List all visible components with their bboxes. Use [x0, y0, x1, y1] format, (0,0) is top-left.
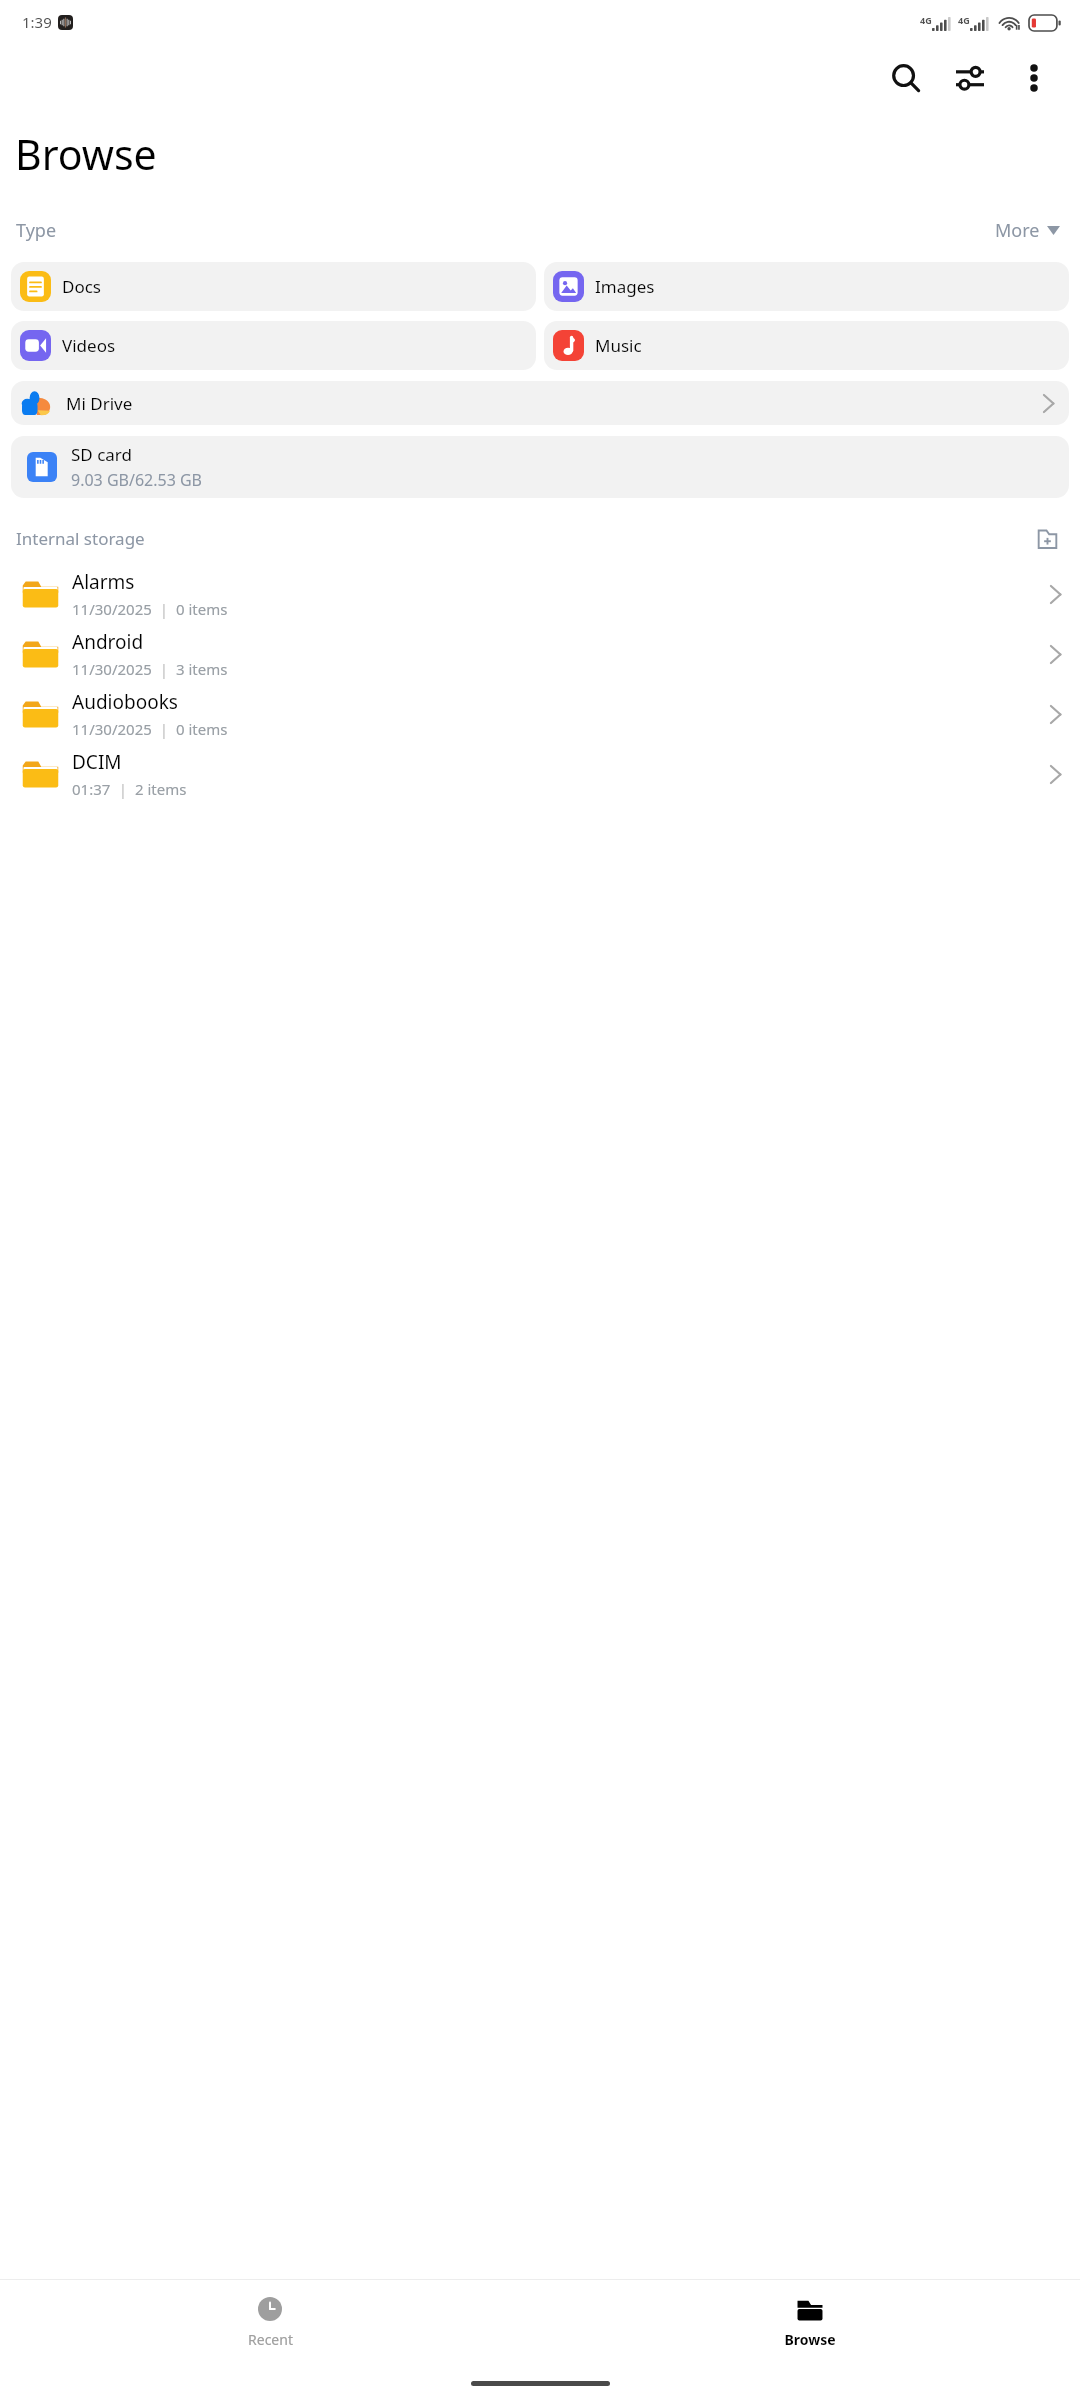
staticText: Browse — [15, 126, 157, 182]
staticText: Type — [16, 218, 57, 243]
staticText: DCIM — [72, 749, 122, 775]
staticText: More — [995, 218, 1040, 243]
button[interactable]: Search — [874, 46, 938, 110]
button[interactable]: Images — [544, 262, 1069, 311]
staticText: Internal storage — [16, 527, 145, 550]
button[interactable]: SD card — [11, 436, 1069, 498]
staticText: | — [111, 779, 135, 799]
staticText: SD card — [71, 443, 132, 466]
button[interactable]: More options — [1002, 46, 1066, 110]
button[interactable]: New folder — [1030, 521, 1064, 555]
button[interactable]: Filter — [938, 46, 1002, 110]
staticText: | — [152, 719, 176, 739]
button[interactable]: Music — [544, 321, 1069, 370]
staticText: Music — [595, 334, 642, 357]
staticText: 11/30/2025 — [72, 599, 152, 619]
button[interactable]: Audiobooks — [0, 684, 1080, 744]
staticText: 4G — [958, 14, 970, 26]
button[interactable]: DCIM — [0, 744, 1080, 804]
staticText: 9.03 GB/62.53 GB — [71, 469, 203, 491]
button[interactable]: Alarms — [0, 564, 1080, 624]
staticText: Browse — [784, 2330, 836, 2349]
button[interactable]: Mi Drive — [11, 381, 1069, 425]
staticText: Images — [595, 275, 655, 298]
staticText: Audiobooks — [72, 689, 178, 715]
staticText: 01:37 — [72, 779, 111, 799]
staticText: 4G — [920, 14, 932, 26]
staticText: 1:39 — [22, 12, 52, 32]
button[interactable]: Browse — [540, 2280, 1080, 2366]
staticText: Docs — [62, 275, 101, 298]
staticText: 3 items — [176, 659, 228, 679]
button[interactable]: Recent — [0, 2280, 540, 2366]
staticText: | — [152, 599, 176, 619]
staticText: Android — [72, 629, 144, 655]
staticText: 11/30/2025 — [72, 659, 152, 679]
staticText: | — [152, 659, 176, 679]
staticText: Recent — [248, 2330, 293, 2349]
staticText: 11/30/2025 — [72, 719, 152, 739]
button[interactable]: Videos — [11, 321, 536, 370]
staticText: 0 items — [176, 719, 228, 739]
staticText: 2 items — [135, 779, 187, 799]
button[interactable]: Android — [0, 624, 1080, 684]
staticText: Videos — [62, 334, 116, 357]
staticText: Alarms — [72, 569, 135, 595]
staticText: Mi Drive — [66, 392, 133, 415]
button[interactable]: Docs — [11, 262, 536, 311]
staticText: 0 items — [176, 599, 228, 619]
button[interactable]: More — [991, 214, 1064, 247]
